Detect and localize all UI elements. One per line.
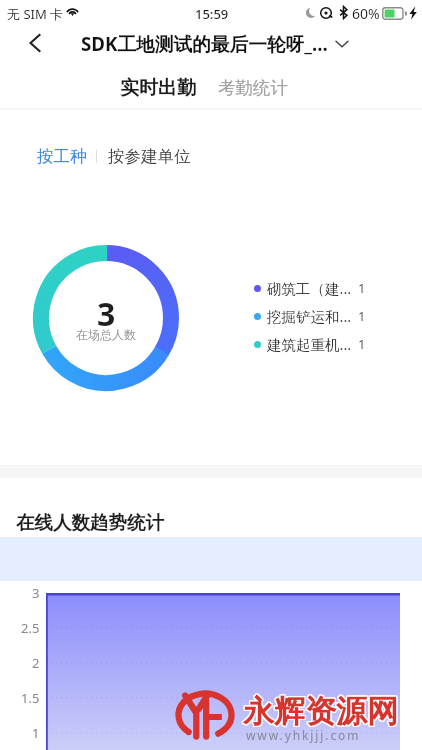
staticText: 1.5 bbox=[21, 689, 40, 704]
staticText: 永辉资源网 bbox=[243, 692, 398, 731]
staticText: 永辉资源网 bbox=[244, 692, 399, 731]
button[interactable]: Expand bbox=[336, 40, 348, 48]
staticText: 2.5 bbox=[21, 619, 40, 634]
button[interactable]: SDK工地测试的最后一轮呀_... bbox=[81, 31, 328, 57]
staticText: 3 bbox=[32, 584, 40, 599]
staticText: 在场总人数 bbox=[76, 327, 136, 342]
staticText: SDK工地测试的最后一轮呀_... bbox=[81, 31, 328, 57]
staticText: 永辉资源网 bbox=[244, 691, 399, 730]
button[interactable]: 砌筑工（建... bbox=[254, 278, 366, 298]
staticText: 永辉资源网 bbox=[242, 691, 397, 730]
button[interactable]: 建筑起重机... bbox=[254, 334, 366, 354]
button[interactable]: 考勤统计 bbox=[218, 77, 288, 99]
staticText: www.yhkjjj.com bbox=[246, 727, 361, 743]
staticText: 1 bbox=[358, 279, 366, 297]
staticText: 实时出勤 bbox=[120, 76, 196, 100]
staticText: 1 bbox=[358, 335, 366, 353]
staticText: 1 bbox=[358, 307, 366, 325]
button[interactable]: 实时出勤 bbox=[120, 76, 196, 100]
staticText: 在线人数趋势统计 bbox=[16, 511, 164, 534]
staticText: 15:59 bbox=[195, 5, 229, 23]
staticText: 建筑起重机... bbox=[267, 334, 352, 354]
staticText: 60% bbox=[352, 4, 380, 23]
staticText: 砌筑工（建... bbox=[267, 278, 352, 298]
staticText: 按工种 bbox=[37, 146, 87, 167]
button[interactable]: 按工种 bbox=[37, 146, 87, 167]
staticText: 永辉资源网 bbox=[243, 691, 398, 730]
button[interactable]: Back bbox=[8, 21, 62, 65]
staticText: 无 SIM 卡 bbox=[7, 5, 64, 23]
staticText: 2 bbox=[32, 654, 40, 669]
button[interactable]: 挖掘铲运和... bbox=[254, 306, 366, 326]
button[interactable]: 按参建单位 bbox=[108, 146, 191, 167]
staticText: 永辉资源网 bbox=[244, 693, 399, 732]
staticText: 3 bbox=[97, 292, 116, 336]
staticText: 考勤统计 bbox=[218, 77, 288, 99]
staticText: 按参建单位 bbox=[108, 146, 191, 167]
staticText: 永辉资源网 bbox=[242, 693, 397, 732]
staticText: 1 bbox=[32, 724, 40, 739]
staticText: 挖掘铲运和... bbox=[267, 306, 352, 326]
staticText: 永辉资源网 bbox=[243, 693, 398, 732]
staticText: 永辉资源网 bbox=[242, 692, 397, 731]
